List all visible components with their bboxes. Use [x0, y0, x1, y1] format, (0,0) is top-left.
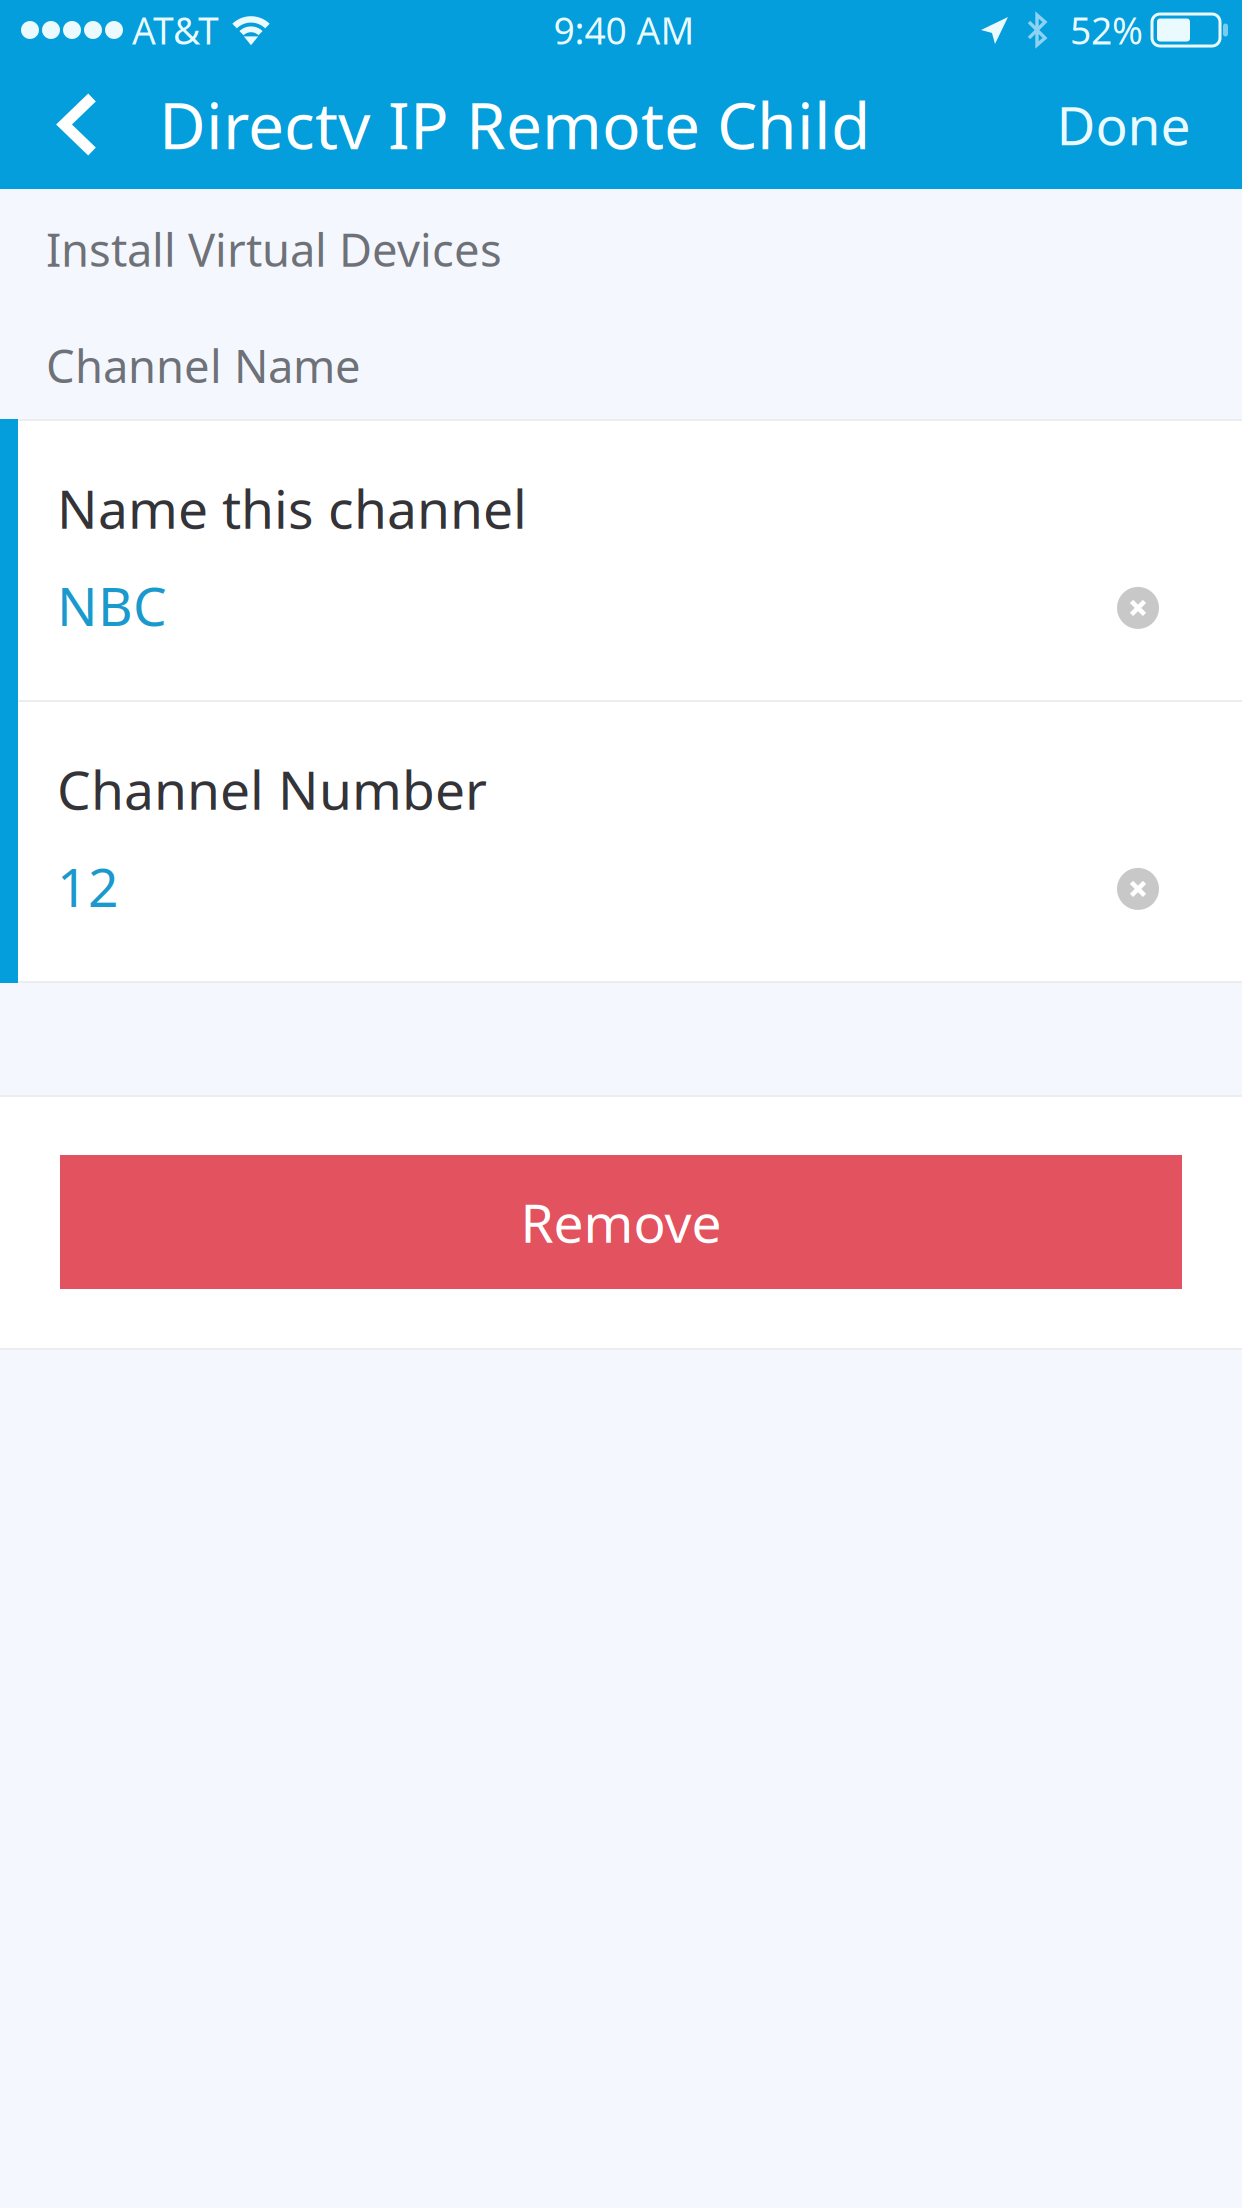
staticText: Channel Number [57, 754, 487, 824]
staticText: NBC [57, 570, 167, 641]
staticText: 52% [1070, 5, 1143, 55]
button[interactable]: Done [1033, 60, 1242, 189]
staticText: 9:40 AM [553, 5, 694, 55]
staticText: Remove [520, 1187, 721, 1257]
button[interactable]: Clear Name this channel [1117, 582, 1159, 629]
button[interactable]: Clear Channel Number [1117, 863, 1159, 910]
staticText: 12 [57, 851, 119, 922]
button[interactable]: Remove [60, 1155, 1182, 1289]
staticText: Install Virtual Devices [46, 219, 502, 279]
button[interactable]: Name this channel [0, 421, 1242, 700]
staticText: Directv IP Remote Child [159, 82, 870, 167]
staticText: Channel Name [46, 335, 361, 395]
button[interactable]: Back [0, 60, 159, 189]
staticText: Done [1056, 89, 1190, 160]
button[interactable]: Channel Number [0, 702, 1242, 981]
staticText: AT&T [132, 5, 219, 55]
staticText: Name this channel [57, 473, 527, 543]
